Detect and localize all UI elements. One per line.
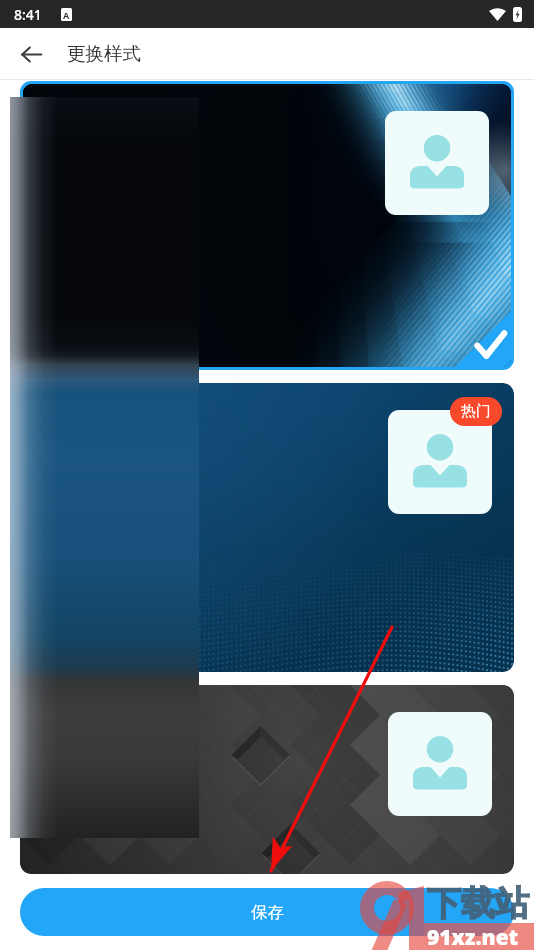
staticText: 更换样式 bbox=[67, 42, 141, 65]
staticText: 下载站 bbox=[427, 882, 529, 925]
staticText: A bbox=[63, 9, 70, 21]
staticText: 8:41 bbox=[14, 5, 42, 24]
button[interactable]: 热门 bbox=[20, 383, 514, 672]
button[interactable] bbox=[20, 685, 514, 874]
button[interactable]: 保存 bbox=[20, 888, 514, 936]
staticText: 91xz.net bbox=[427, 923, 519, 950]
staticText: 热门 bbox=[461, 402, 491, 421]
button[interactable]: Back bbox=[9, 32, 53, 76]
staticText: 保存 bbox=[251, 902, 284, 923]
button[interactable] bbox=[20, 81, 514, 370]
